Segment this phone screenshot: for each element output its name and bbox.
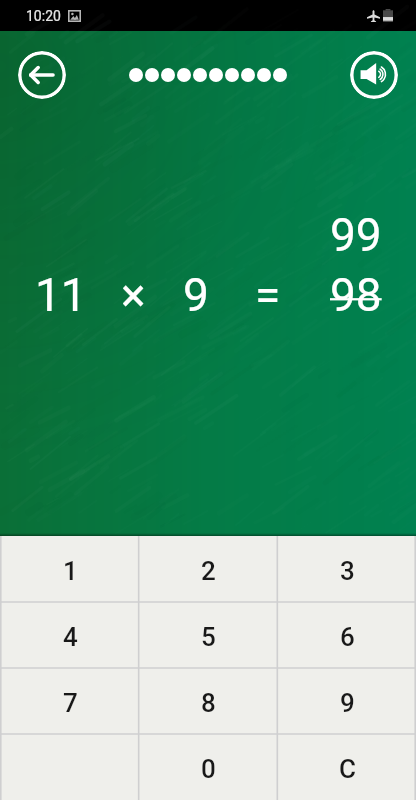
button[interactable]: 6	[277, 602, 416, 668]
staticText: 7	[63, 688, 78, 718]
staticText: 1	[63, 556, 78, 586]
staticText: 98	[330, 268, 382, 322]
button[interactable]: Sound	[350, 51, 398, 99]
staticText: 0	[201, 754, 216, 784]
staticText: 11	[35, 268, 87, 322]
staticText: 9	[340, 688, 355, 718]
staticText: C	[339, 754, 356, 784]
staticText: 4	[63, 622, 78, 652]
staticText: =	[255, 268, 281, 322]
button[interactable]	[0, 734, 138, 800]
staticText: 2	[201, 556, 216, 586]
button[interactable]: 3	[277, 536, 416, 602]
button[interactable]: C	[277, 734, 416, 800]
staticText: 99	[330, 208, 382, 262]
staticText: 10:20	[26, 8, 61, 24]
button[interactable]: 0	[138, 734, 277, 800]
button[interactable]: 5	[138, 602, 277, 668]
staticText: 8	[201, 688, 216, 718]
button[interactable]: 8	[138, 668, 277, 734]
staticText: 9	[183, 268, 209, 322]
button[interactable]: 2	[138, 536, 277, 602]
staticText: 6	[340, 622, 355, 652]
staticText: 5	[201, 622, 216, 652]
staticText: ×	[121, 268, 146, 322]
button[interactable]: 1	[0, 536, 138, 602]
staticText: 3	[340, 556, 355, 586]
button[interactable]: 7	[0, 668, 138, 734]
button[interactable]: 4	[0, 602, 138, 668]
button[interactable]: 9	[277, 668, 416, 734]
button[interactable]: Back	[18, 51, 66, 99]
